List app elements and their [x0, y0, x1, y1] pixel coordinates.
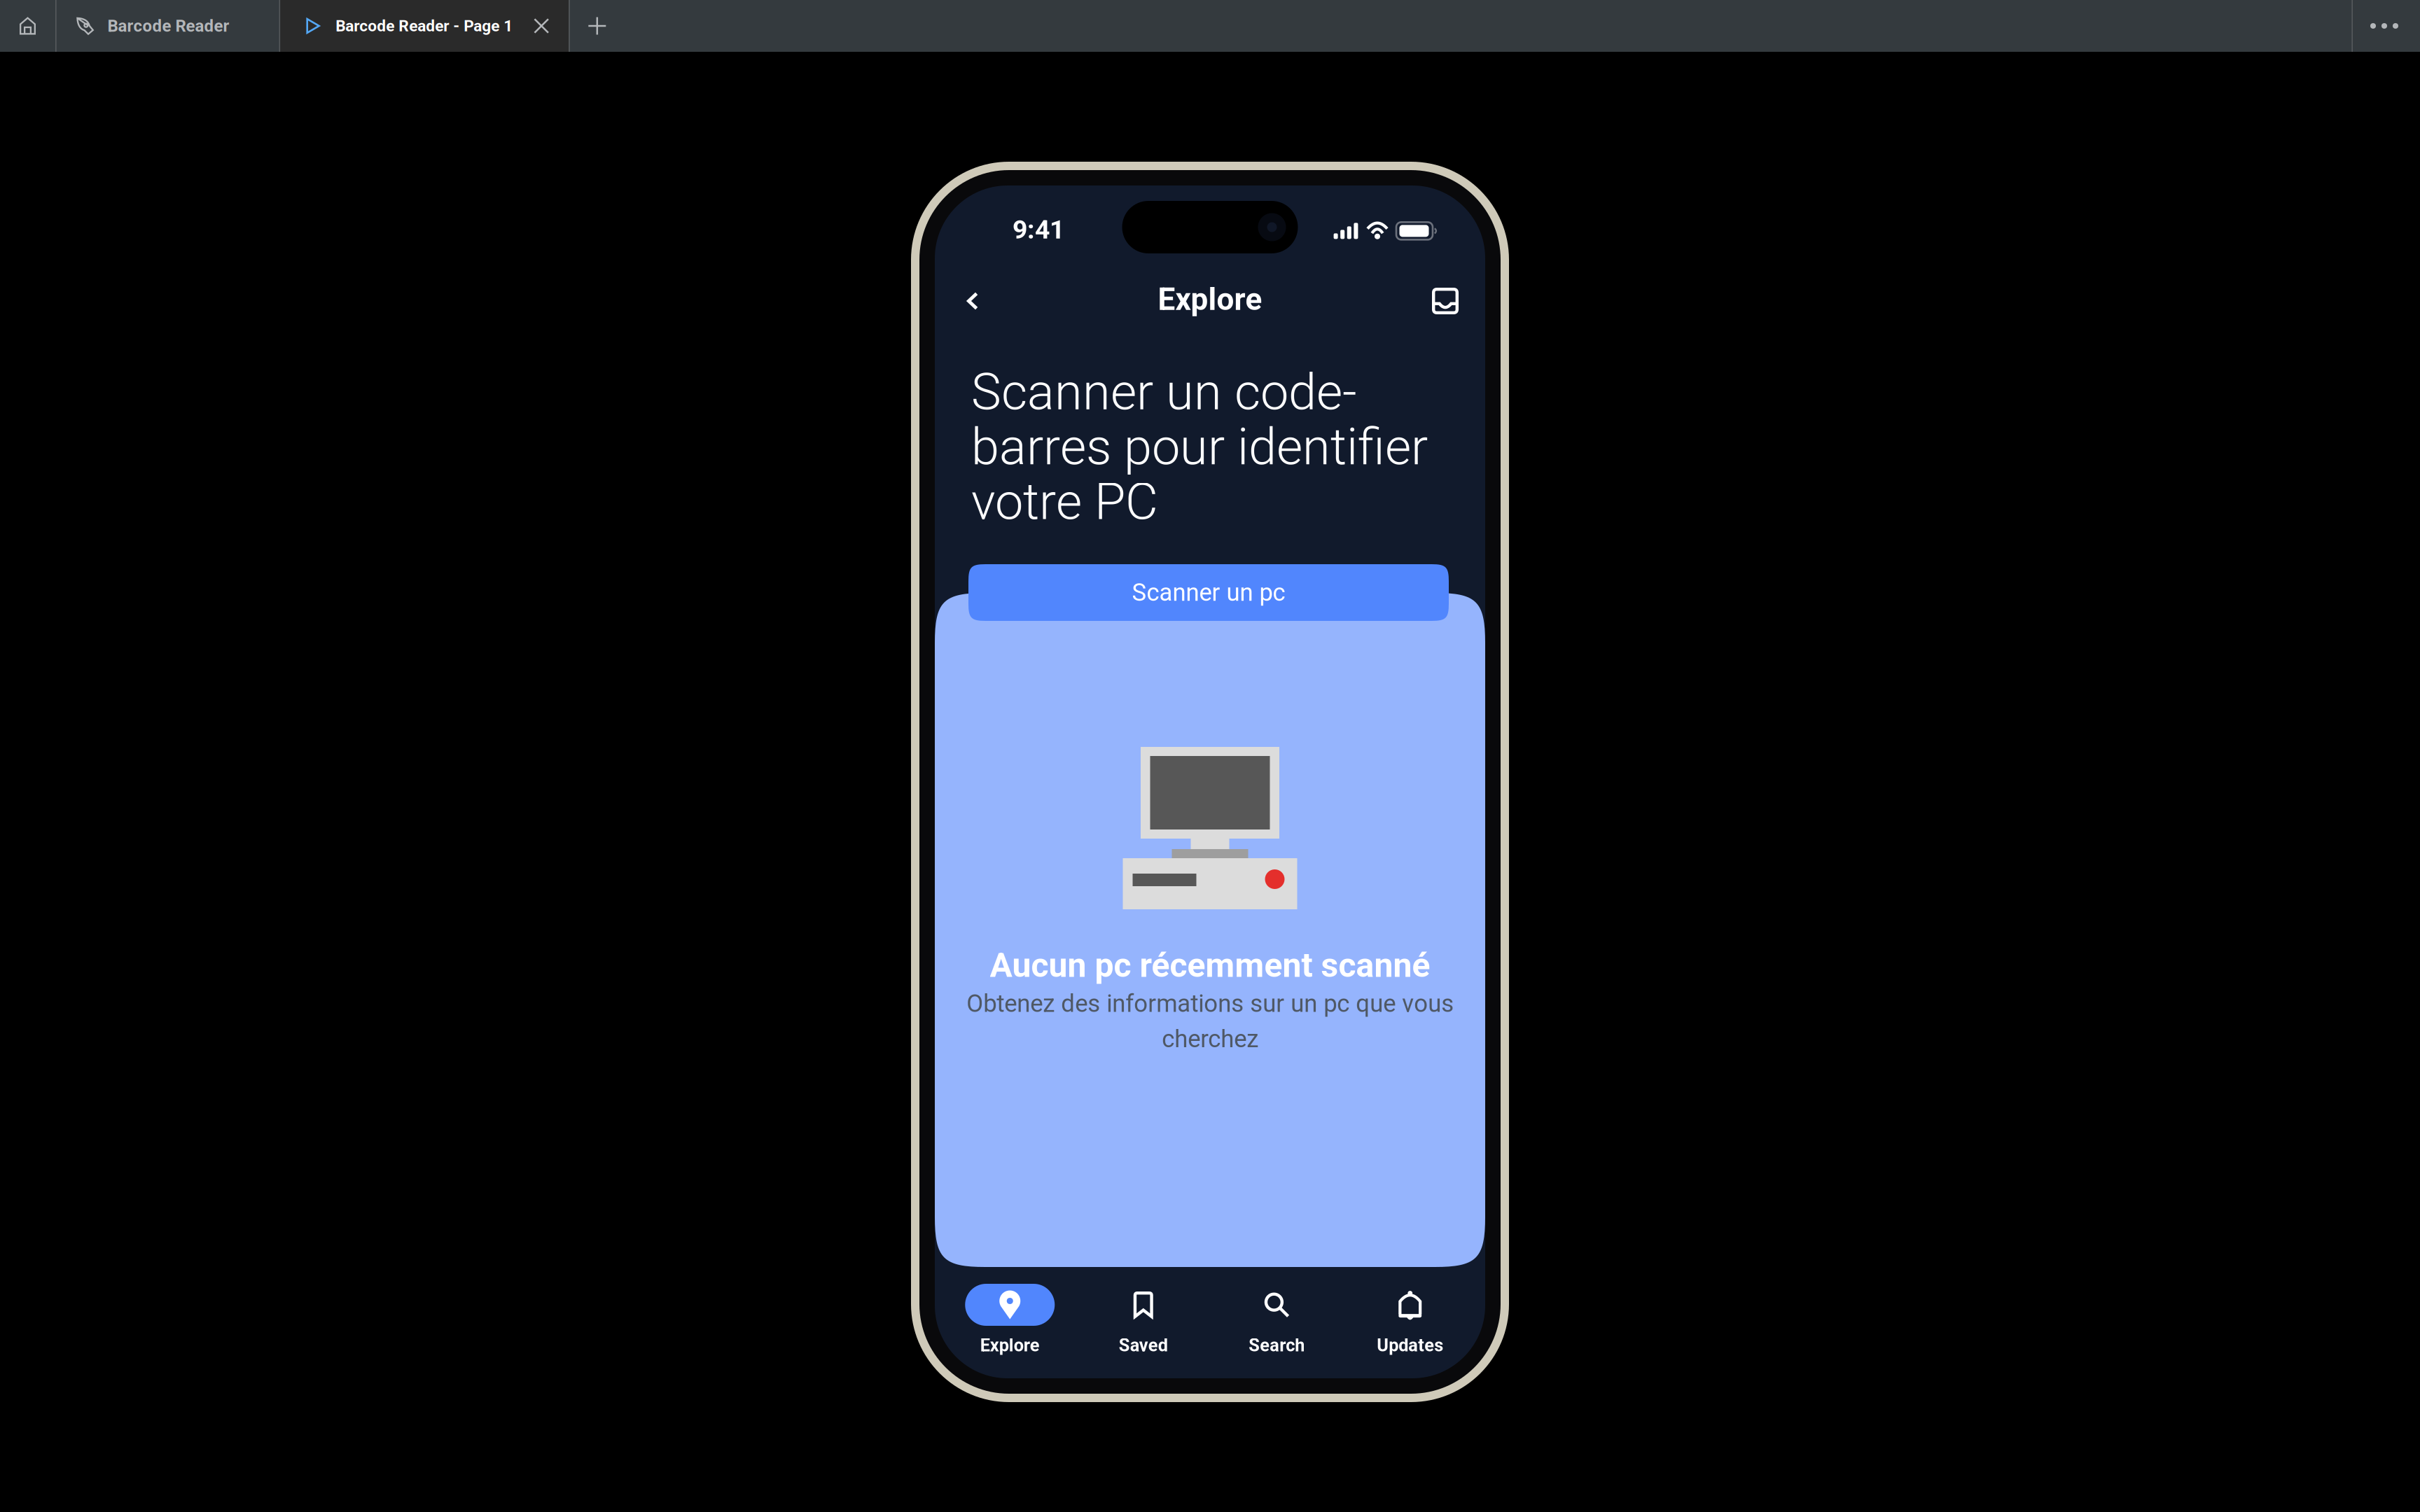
staticText: Updates: [1377, 1335, 1443, 1356]
button[interactable]: Updates: [1343, 1267, 1477, 1378]
staticText: Explore: [980, 1335, 1040, 1356]
button[interactable]: Explore: [943, 1267, 1077, 1378]
staticText: Search: [1249, 1335, 1305, 1356]
staticText: Obtenez des informations sur un pc que v…: [966, 989, 1454, 1053]
staticText: Scanner un code-barres pour identifier v…: [971, 363, 1428, 531]
button[interactable]: Saved: [1077, 1267, 1210, 1378]
button[interactable]: New tab: [570, 0, 624, 52]
staticText: Saved: [1119, 1335, 1168, 1356]
staticText: Scanner un pc: [1132, 578, 1285, 607]
button[interactable]: Barcode Reader - Page 1: [280, 0, 569, 52]
button[interactable]: Home: [0, 0, 55, 52]
staticText: Barcode Reader: [108, 16, 229, 36]
button[interactable]: Barcode Reader: [56, 0, 279, 52]
button[interactable]: Inbox: [1419, 275, 1471, 327]
staticText: 9:41: [1013, 214, 1064, 245]
staticText: Barcode Reader - Page 1: [336, 17, 513, 35]
staticText: Aucun pc récemment scanné: [990, 946, 1430, 985]
button[interactable]: More options: [2353, 0, 2420, 52]
button[interactable]: Search: [1210, 1267, 1343, 1378]
button[interactable]: Back: [947, 275, 999, 327]
button[interactable]: Scanner un pc: [968, 564, 1449, 621]
staticText: Explore: [1158, 281, 1262, 318]
